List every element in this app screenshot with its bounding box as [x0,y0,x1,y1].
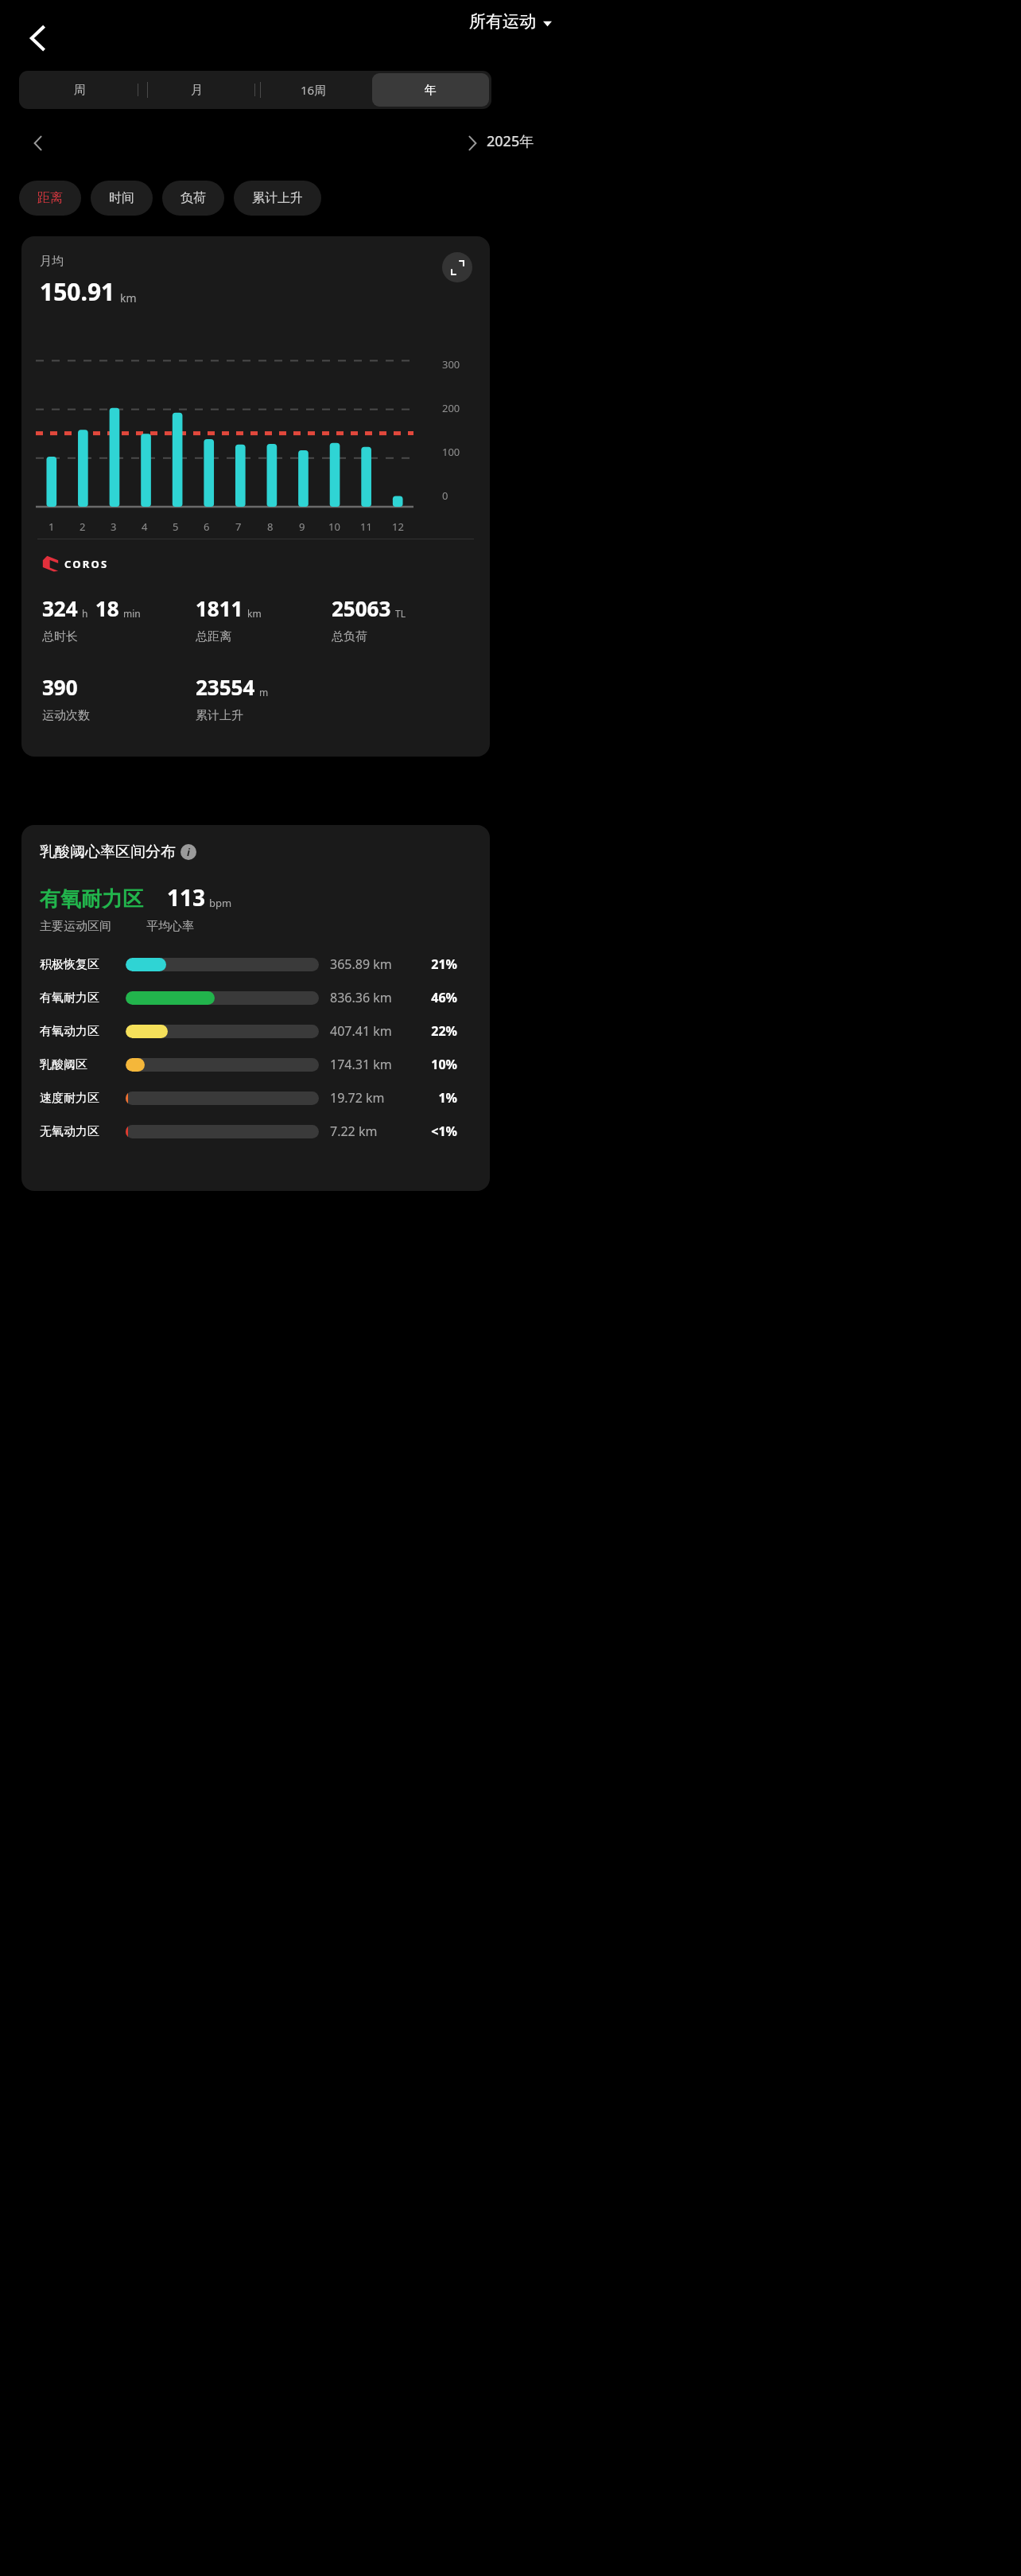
staticText: km [247,607,262,620]
staticText: 主要运动区间 [40,919,111,934]
button[interactable]: 有氧耐力区 [21,988,490,1007]
staticText: 5 [173,519,179,534]
staticText: 总距离 [196,629,231,644]
staticText: COROS [64,557,109,571]
button[interactable]: Expand chart [442,252,472,282]
staticText: 1811 [196,594,243,622]
staticText: 23554 [196,673,255,701]
button[interactable]: 16周 [255,73,372,107]
staticText: 月 [191,83,203,98]
staticText: 积极恢复区 [40,957,99,972]
staticText: 乳酸阈心率区间分布 [40,842,176,862]
staticText: 3 [111,519,117,534]
staticText: km [120,290,137,305]
staticText: <1% [410,1123,457,1140]
staticText: 10 [328,519,340,534]
staticText: 18 [95,594,119,622]
staticText: 累计上升 [252,190,303,206]
staticText: 174.31 km [330,1056,392,1073]
staticText: 150.91 [40,275,115,308]
button[interactable]: 负荷 [162,181,224,216]
button[interactable]: Previous year [16,121,60,165]
button[interactable]: 速度耐力区 [21,1088,490,1107]
staticText: 9 [299,519,305,534]
button[interactable]: 无氧动力区 [21,1122,490,1141]
button[interactable]: 时间 [91,181,153,216]
staticText: 月均 [40,254,64,269]
staticText: 12 [392,519,404,534]
staticText: 46% [410,989,457,1006]
staticText: 年 [425,83,437,98]
staticText: min [123,607,141,620]
staticText: 2 [80,519,86,534]
staticText: 324 [42,594,78,622]
staticText: 有氧动力区 [40,1024,99,1039]
staticText: 390 [42,673,78,701]
staticText: h [82,607,88,620]
button[interactable]: 有氧动力区 [21,1021,490,1041]
staticText: 365.89 km [330,955,392,973]
staticText: 21% [410,955,457,973]
staticText: 1% [410,1089,457,1107]
staticText: 407.41 km [330,1022,392,1040]
button[interactable]: Back [14,14,62,62]
button[interactable]: 年 [372,73,489,107]
staticText: 总负荷 [332,629,367,644]
staticText: 19.72 km [330,1089,385,1107]
staticText: 0 [442,488,448,503]
button[interactable]: 距离 [19,181,81,216]
staticText: 累计上升 [196,708,243,723]
staticText: 有氧耐力区 [40,990,99,1006]
staticText: 10% [410,1056,457,1073]
staticText: 时间 [109,190,134,206]
staticText: 113 [167,882,206,912]
staticText: 负荷 [181,190,206,206]
staticText: 4 [142,519,148,534]
staticText: 无氧动力区 [40,1124,99,1139]
button[interactable]: 累计上升 [234,181,321,216]
button[interactable]: Next year [450,121,495,165]
staticText: 25063 [332,594,391,622]
staticText: 7.22 km [330,1123,378,1140]
staticText: i [187,845,190,859]
staticText: 16周 [301,82,327,98]
button[interactable]: 月 [138,73,255,107]
staticText: 平均心率 [146,919,194,934]
staticText: TL [395,607,406,620]
staticText: 300 [442,357,460,372]
button[interactable]: Info [181,844,196,860]
staticText: m [259,686,269,698]
staticText: bpm [209,896,232,910]
button[interactable]: 积极恢复区 [21,955,490,974]
staticText: 11 [360,519,372,534]
staticText: 有氧耐力区 [40,886,143,912]
button[interactable]: 周 [21,73,138,107]
staticText: 6 [204,519,210,534]
staticText: 速度耐力区 [40,1091,99,1106]
staticText: 总时长 [42,629,78,644]
staticText: 周 [74,83,86,98]
staticText: 7 [235,519,242,534]
staticText: 200 [442,401,460,415]
staticText: 8 [267,519,274,534]
staticText: 1 [49,519,55,534]
staticText: 运动次数 [42,708,90,723]
staticText: 距离 [37,190,63,206]
staticText: 100 [442,445,460,459]
button[interactable]: 乳酸阈区 [21,1055,490,1074]
button[interactable]: 所有运动 [469,11,552,32]
staticText: 2025年 [487,131,534,151]
staticText: 所有运动 [469,11,536,32]
staticText: 乳酸阈区 [40,1057,87,1072]
staticText: 22% [410,1022,457,1040]
staticText: 836.36 km [330,989,392,1006]
